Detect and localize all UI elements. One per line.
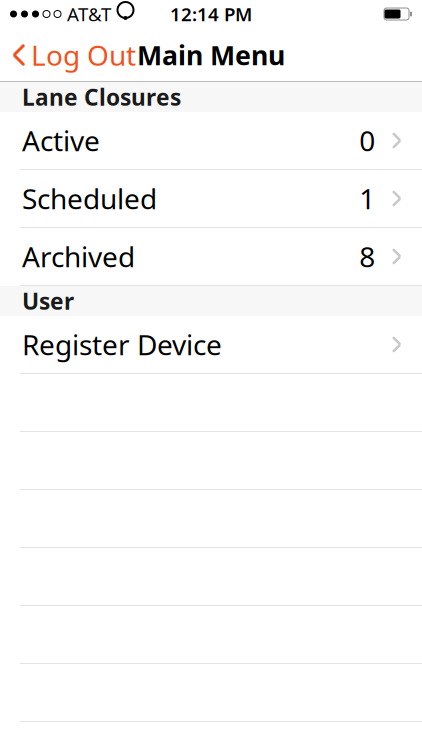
button[interactable]: Scheduled	[0, 170, 422, 228]
staticText: Main Menu	[137, 37, 285, 73]
staticText: Log Out	[31, 36, 136, 74]
staticText: Register Device	[22, 326, 222, 363]
staticText: Active	[22, 122, 100, 159]
staticText: Scheduled	[22, 180, 157, 217]
button[interactable]: Register Device	[0, 316, 422, 374]
staticText: 12:14 PM	[170, 2, 252, 26]
staticText: 8	[359, 238, 375, 275]
button[interactable]: Archived	[0, 228, 422, 286]
button[interactable]: Log Out	[0, 33, 146, 77]
staticText: AT&T	[67, 2, 111, 26]
staticText: 1	[359, 180, 375, 217]
staticText: Archived	[22, 238, 135, 275]
staticText: Lane Closures	[22, 82, 181, 112]
staticText: User	[22, 286, 74, 316]
button[interactable]: Active	[0, 112, 422, 170]
staticText: 0	[359, 122, 375, 159]
